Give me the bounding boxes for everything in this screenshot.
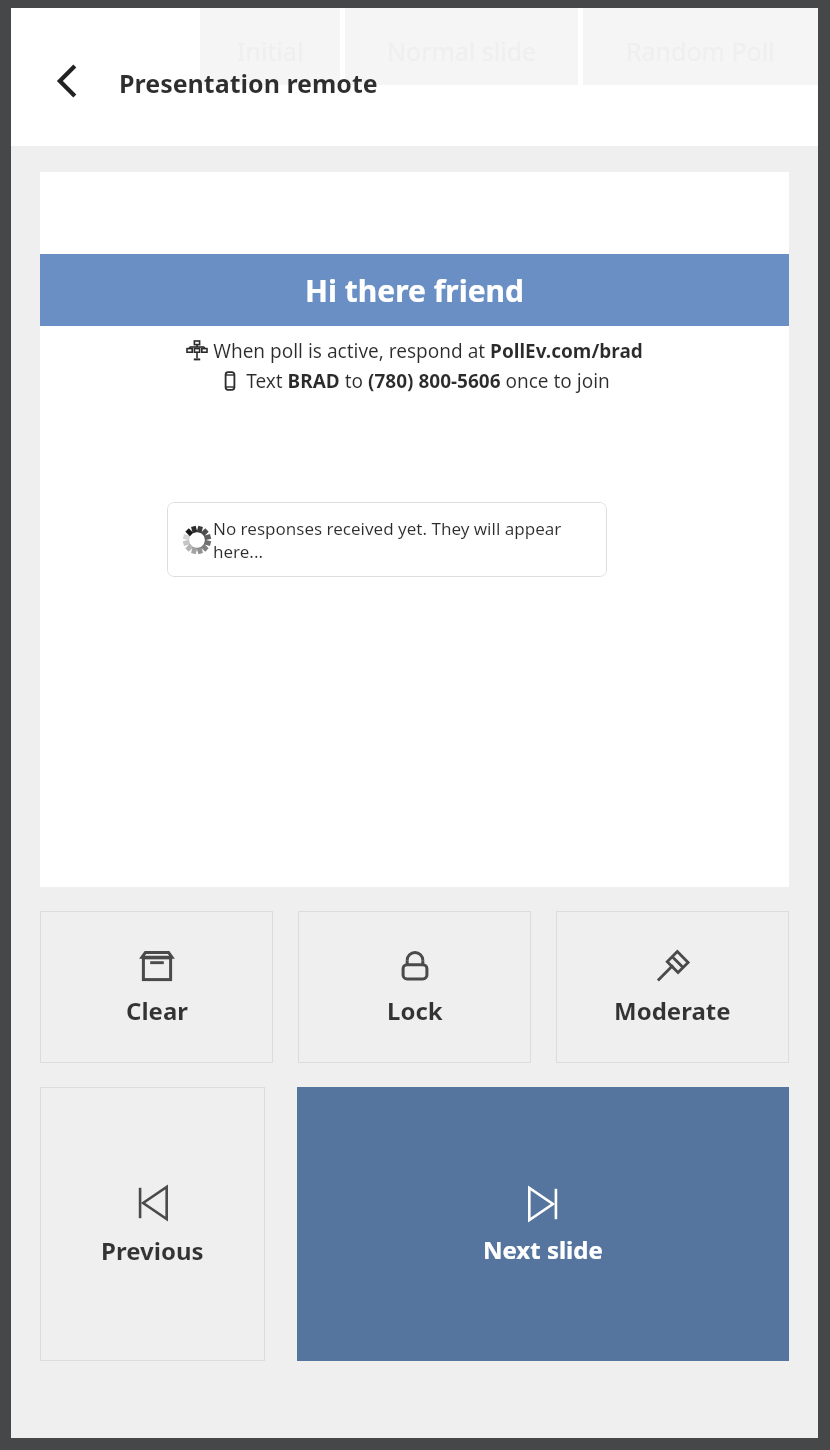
button[interactable]: Lock bbox=[298, 911, 531, 1063]
staticText: Text BRAD to (780) 800-5606 once to join bbox=[246, 368, 610, 394]
other: Clear bbox=[140, 949, 174, 983]
other: Next slide bbox=[524, 1185, 562, 1223]
staticText: Lock bbox=[387, 994, 443, 1027]
button[interactable]: Normal slide bbox=[345, 8, 578, 85]
button[interactable]: Next slide bbox=[297, 1087, 789, 1361]
other: Previous slide bbox=[134, 1184, 172, 1222]
button[interactable]: Previous slide bbox=[40, 1087, 265, 1361]
staticText: When poll is active, respond at PollEv.c… bbox=[213, 338, 643, 364]
other: Moderate bbox=[655, 948, 691, 984]
button[interactable]: Initial bbox=[200, 8, 340, 85]
staticText: No responses received yet. They will app… bbox=[213, 517, 607, 563]
button[interactable]: Moderate bbox=[556, 911, 789, 1063]
staticText: Hi there friend bbox=[305, 270, 525, 311]
staticText: Clear bbox=[126, 994, 188, 1027]
button[interactable]: Back bbox=[37, 50, 99, 112]
staticText: Moderate bbox=[614, 994, 731, 1027]
staticText: Next slide bbox=[483, 1233, 603, 1266]
other: Lock bbox=[398, 949, 432, 983]
button[interactable]: Clear bbox=[40, 911, 273, 1063]
staticText: Previous bbox=[101, 1234, 204, 1267]
staticText: Presentation remote bbox=[119, 66, 378, 100]
